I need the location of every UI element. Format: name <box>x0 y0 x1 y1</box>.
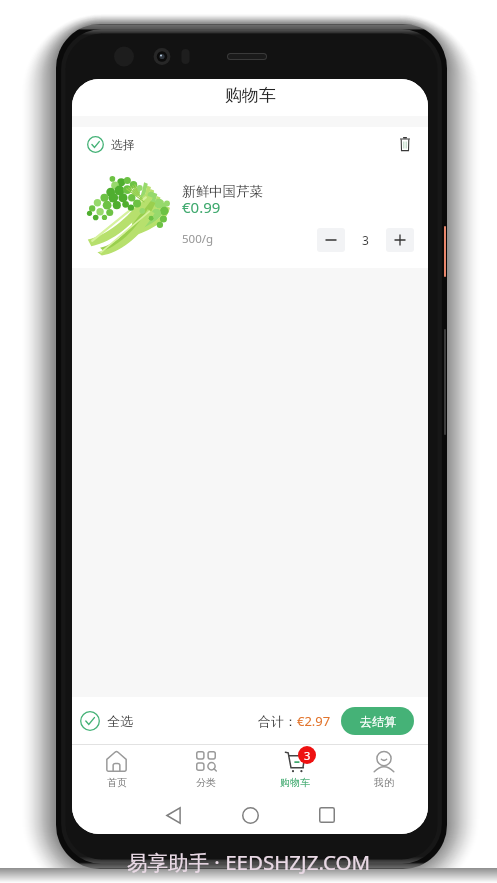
staticText: 去结算 <box>360 714 396 729</box>
staticText: €2.97 <box>297 712 331 730</box>
button[interactable]: Home <box>237 802 263 828</box>
button[interactable]: 选择 <box>87 136 135 153</box>
staticText: 购物车 <box>280 776 310 789</box>
button[interactable]: 我的 <box>339 745 428 799</box>
button[interactable]: Delete <box>394 133 416 155</box>
button[interactable]: 去结算 <box>341 707 414 735</box>
staticText: 首页 <box>107 776 127 789</box>
button[interactable]: Recent apps <box>314 802 340 828</box>
staticText: 500/g <box>182 231 214 247</box>
staticText: 新鲜中国芹菜 <box>182 183 263 200</box>
staticText: 购物车 <box>225 85 276 106</box>
staticText: 全选 <box>107 713 133 729</box>
button[interactable]: 首页 <box>72 745 161 799</box>
button[interactable]: 全选 <box>80 711 133 731</box>
button[interactable]: Decrease quantity <box>317 228 345 252</box>
staticText: 易享助手 · EEDSHZJZ.COM <box>127 848 371 876</box>
staticText: 选择 <box>111 137 135 152</box>
staticText: €0.99 <box>182 197 221 217</box>
staticText: 我的 <box>374 776 394 789</box>
button[interactable]: 分类 <box>161 745 250 799</box>
staticText: 分类 <box>196 776 216 789</box>
staticText: 合计： <box>258 713 297 729</box>
staticText: 3 <box>362 232 369 248</box>
staticText: 3 <box>304 748 311 763</box>
button[interactable]: 3 <box>250 745 339 799</box>
button[interactable]: Increase quantity <box>386 228 414 252</box>
button[interactable]: Back <box>160 802 186 828</box>
